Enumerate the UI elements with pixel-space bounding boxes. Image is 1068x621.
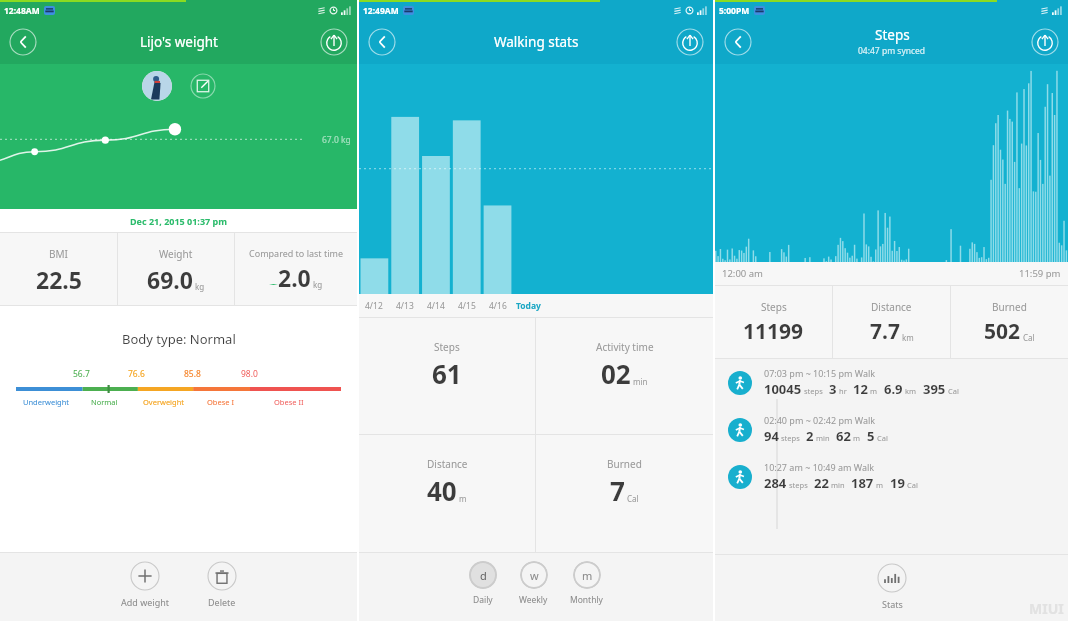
staticText: Add weight <box>121 596 169 608</box>
button[interactable]: Compared to last time <box>235 233 357 305</box>
staticText: Steps <box>434 340 460 354</box>
staticText: m <box>853 433 861 443</box>
staticText: Body type: Normal <box>122 330 236 348</box>
button[interactable]: w <box>519 553 548 614</box>
staticText: Weight <box>159 247 193 261</box>
staticText: 67.0 kg <box>322 134 351 146</box>
staticText: 284 <box>764 474 787 492</box>
staticText: min <box>633 376 648 387</box>
staticText: Stats <box>882 598 903 610</box>
staticText: 02 <box>601 356 631 391</box>
button[interactable]: Weight <box>118 233 234 305</box>
button[interactable]: Profile photo <box>142 71 172 101</box>
staticText: Steps <box>875 26 910 44</box>
button[interactable]: Activity time <box>536 318 713 434</box>
button[interactable]: Distance <box>359 435 535 552</box>
staticText: km <box>902 332 914 343</box>
staticText: 10:27 am ~ 10:49 am Walk <box>764 461 875 473</box>
button[interactable]: Back <box>9 28 37 56</box>
button[interactable]: Share <box>320 28 348 56</box>
staticText: 12:48AM <box>4 5 40 17</box>
staticText: Burned <box>607 457 642 471</box>
staticText: 4/15 <box>458 300 476 312</box>
staticText: Normal <box>91 397 118 407</box>
staticText: Today <box>516 300 541 312</box>
button[interactable]: Delete <box>201 553 243 616</box>
staticText: m <box>459 493 467 504</box>
button[interactable]: Steps <box>715 286 832 358</box>
staticText: 22.5 <box>36 264 82 295</box>
staticText: steps <box>789 480 808 490</box>
button[interactable]: 02:40 pm ~ 02:42 pm Walk <box>715 406 1068 453</box>
staticText: Cal <box>627 493 639 504</box>
button[interactable]: Burned <box>536 435 713 552</box>
button[interactable]: 07:03 pm ~ 10:15 pm Walk <box>715 359 1068 406</box>
staticText: m <box>870 386 878 396</box>
staticText: Cal <box>948 386 959 396</box>
staticText: MIUI <box>1029 599 1064 618</box>
staticText: m <box>876 480 884 490</box>
staticText: 61 <box>432 356 462 391</box>
staticText: 4/13 <box>396 300 414 312</box>
button[interactable]: d <box>469 553 497 614</box>
staticText: 62 <box>836 427 851 445</box>
staticText: 04:47 pm synced <box>858 45 926 57</box>
button[interactable]: Share <box>1031 28 1059 56</box>
staticText: 4/14 <box>427 300 445 312</box>
button[interactable]: m <box>570 553 603 614</box>
staticText: Underweight <box>23 397 70 407</box>
staticText: km <box>905 386 917 396</box>
staticText: 10045 <box>764 380 802 398</box>
button[interactable]: Edit <box>190 73 216 99</box>
staticText: 94 <box>764 427 779 445</box>
button[interactable]: Burned <box>951 286 1068 358</box>
staticText: min <box>816 433 830 443</box>
button[interactable]: Steps <box>359 318 535 434</box>
staticText: 6.9 <box>884 380 903 398</box>
staticText: Overweight <box>143 397 185 407</box>
button[interactable]: BMI <box>0 233 117 305</box>
staticText: BMI <box>49 247 68 261</box>
staticText: 4/12 <box>365 300 383 312</box>
button[interactable]: Share <box>676 28 704 56</box>
button[interactable]: Stats <box>877 563 907 610</box>
button[interactable]: Back <box>724 28 752 56</box>
staticText: 69.0 <box>147 264 193 295</box>
staticText: Compared to last time <box>249 247 343 259</box>
staticText: Distance <box>427 457 468 471</box>
staticText: Distance <box>871 300 912 314</box>
staticText: 3 <box>829 380 837 398</box>
staticText: 5 <box>867 427 875 445</box>
staticText: 02:40 pm ~ 02:42 pm Walk <box>764 414 876 426</box>
staticText: kg <box>195 281 205 292</box>
staticText: kg <box>313 279 323 290</box>
staticText: 22 <box>814 474 829 492</box>
staticText: Cal <box>907 480 918 490</box>
staticText: Burned <box>992 300 1027 314</box>
staticText: w <box>530 568 539 583</box>
staticText: 5:00PM <box>719 5 750 17</box>
staticText: steps <box>781 433 800 443</box>
staticText: Steps <box>761 300 787 314</box>
staticText: 187 <box>851 474 874 492</box>
staticText: 502 <box>984 317 1021 346</box>
staticText: 07:03 pm ~ 10:15 pm Walk <box>764 367 876 379</box>
button[interactable]: Back <box>368 28 396 56</box>
staticText: hr <box>839 386 847 396</box>
staticText: 4/16 <box>489 300 507 312</box>
button[interactable]: 10:27 am ~ 10:49 am Walk <box>715 453 1068 500</box>
staticText: Cal <box>877 433 888 443</box>
staticText: 2 <box>806 427 814 445</box>
staticText: 7 <box>610 473 625 508</box>
staticText: Lijo's weight <box>140 33 218 51</box>
button[interactable]: Today <box>513 294 544 317</box>
button[interactable]: Distance <box>833 286 950 358</box>
staticText: m <box>582 568 593 583</box>
button[interactable]: Add weight <box>115 553 175 616</box>
staticText: min <box>831 480 845 490</box>
staticText: 40 <box>427 473 457 508</box>
staticText: 56.7 <box>73 368 90 380</box>
staticText: 76.6 <box>128 368 145 380</box>
staticText: 12:00 am <box>722 267 763 280</box>
staticText: Cal <box>1023 332 1035 343</box>
